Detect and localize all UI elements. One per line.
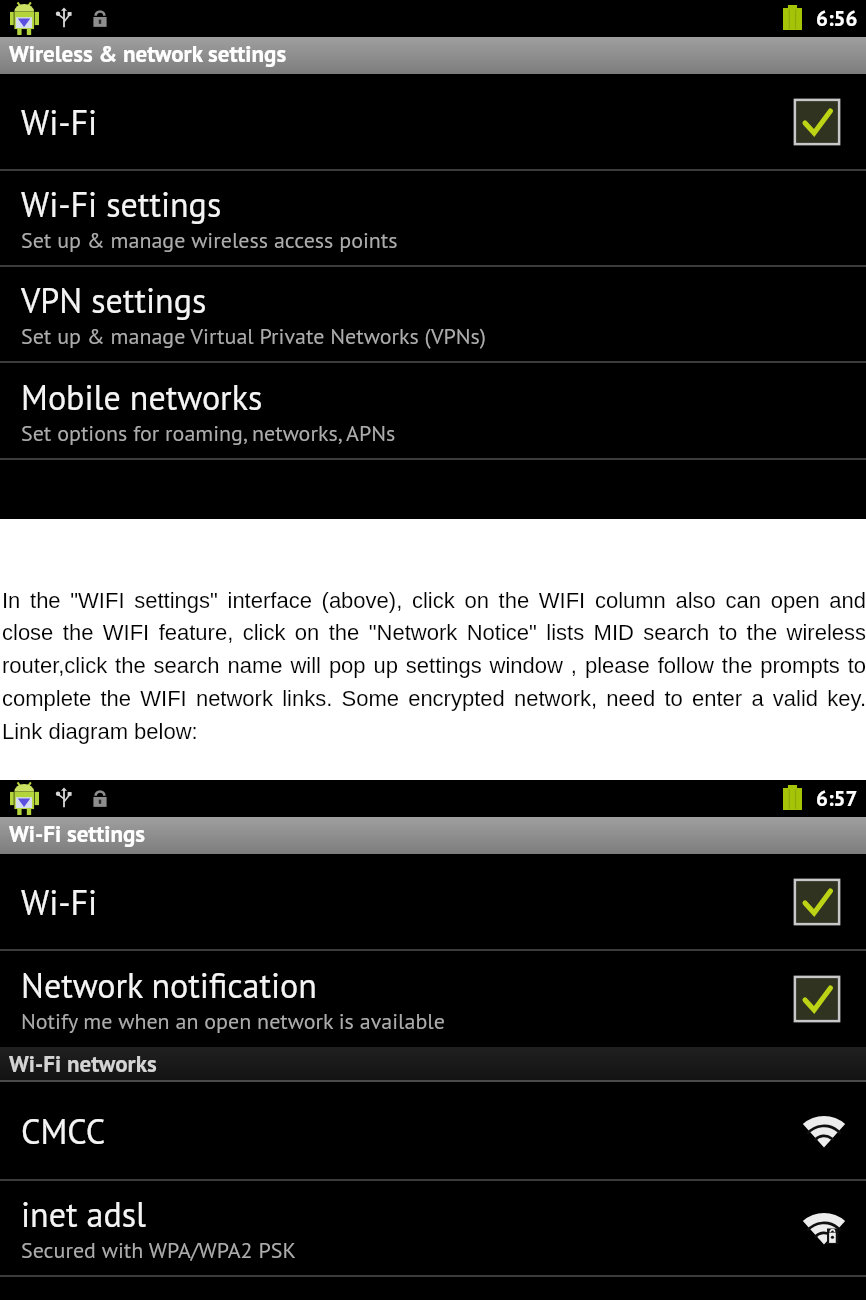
staticText: Wi-Fi [21,100,98,144]
staticText: Set options for roaming, networks, APNs [21,419,396,447]
button[interactable]: inet adsl [0,1181,866,1275]
staticText: 6:57 [816,785,858,812]
staticText: Wi-Fi settings [21,182,222,226]
staticText: Secured with WPA/WPA2 PSK [21,1236,296,1264]
staticText: In the "WIFI settings" interface (above)… [2,588,866,744]
staticText: Wi-Fi settings [9,819,146,849]
staticText: Set up & manage Virtual Private Networks… [21,322,486,350]
button[interactable]: Wi-Fi [0,74,866,169]
staticText: Network notification [21,963,317,1007]
button[interactable]: Wi-Fi settings [0,171,866,265]
button[interactable]: Network notification [0,951,866,1047]
staticText: Set up & manage wireless access points [21,226,398,254]
staticText: Notify me when an open network is availa… [21,1007,445,1035]
button[interactable]: Wi-Fi [0,854,866,949]
other: Open network signal [792,1099,856,1163]
staticText: Mobile networks [21,375,263,419]
button[interactable]: Toggle Wi-Fi [780,86,854,158]
staticText: CMCC [21,1109,106,1153]
button[interactable]: VPN settings [0,267,866,361]
staticText: inet adsl [21,1192,146,1236]
button[interactable]: Toggle Wi-Fi [780,866,854,938]
other: Secured network signal [792,1196,856,1260]
staticText: VPN settings [21,278,207,322]
staticText: 6:56 [816,5,858,32]
staticText: Wi-Fi networks [9,1049,157,1079]
staticText: Wi-Fi [21,880,98,924]
button[interactable]: Mobile networks [0,363,866,458]
staticText: Wireless & network settings [9,39,287,69]
button[interactable]: Toggle Network notification [780,963,854,1035]
button[interactable]: CMCC [0,1082,866,1179]
